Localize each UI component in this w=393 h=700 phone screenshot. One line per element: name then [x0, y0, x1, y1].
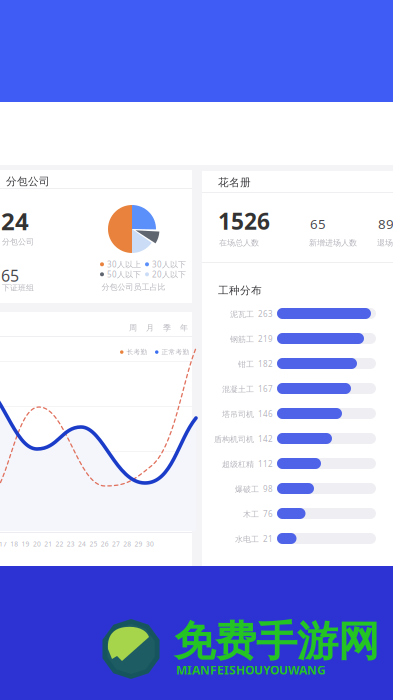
staticText: 钢筋工 219 [230, 334, 273, 344]
staticText: 24 [1, 205, 29, 237]
staticText: 24 [78, 540, 86, 548]
staticText: 30人以下 [152, 259, 186, 270]
staticText: 塔吊司机 146 [222, 409, 273, 419]
staticText: 钳工 182 [238, 359, 273, 369]
staticText: 22 [55, 540, 63, 548]
staticText: 爆破工 98 [235, 484, 273, 494]
staticText: 27 [112, 540, 120, 548]
staticText: 65 [310, 215, 326, 233]
staticText: 超级杠精 112 [222, 459, 273, 469]
staticText: MIANFEISHOUYOUWANG [176, 662, 326, 678]
staticText: 17 [0, 540, 7, 548]
staticText: 下证班组 [2, 283, 34, 293]
staticText: 18 [10, 540, 18, 548]
staticText: 1526 [218, 206, 270, 236]
staticText: 月 [146, 323, 154, 333]
staticText: 89 [378, 215, 393, 233]
staticText: 年 [180, 323, 188, 333]
staticText: 19 [22, 540, 30, 548]
staticText: 长考勤 [126, 348, 147, 356]
staticText: 分包公司 [2, 237, 34, 247]
staticText: 20人以下 [152, 269, 186, 280]
staticText: 30人以上 [107, 259, 141, 270]
staticText: 26 [101, 540, 109, 548]
staticText: 新增进场人数 [309, 238, 357, 248]
staticText: 50人以下 [107, 269, 141, 280]
staticText: 退场人数 [377, 238, 393, 248]
staticText: 23 [67, 540, 75, 548]
staticText: 木工 76 [243, 509, 273, 519]
staticText: 盾构机司机 142 [214, 434, 273, 444]
staticText: 分包公司 [6, 175, 50, 188]
staticText: 分包公司员工占比 [101, 282, 165, 292]
staticText: 混凝土工 167 [222, 384, 273, 394]
staticText: 29 [135, 540, 143, 548]
staticText: 25 [89, 540, 97, 548]
staticText: 泥瓦工 263 [230, 309, 273, 319]
staticText: 28 [123, 540, 131, 548]
staticText: 正常考勤 [161, 348, 189, 356]
staticText: 21 [44, 540, 52, 548]
staticText: 周 [129, 323, 137, 333]
staticText: 季 [163, 323, 171, 333]
staticText: 20 [33, 540, 41, 548]
staticText: 30 [146, 540, 154, 548]
staticText: 花名册 [218, 176, 251, 189]
staticText: 在场总人数 [219, 238, 259, 248]
staticText: 水电工 21 [235, 534, 273, 544]
staticText: 免费手游网 [174, 616, 379, 667]
staticText: 工种分布 [218, 284, 262, 297]
staticText: 65 [1, 265, 19, 286]
